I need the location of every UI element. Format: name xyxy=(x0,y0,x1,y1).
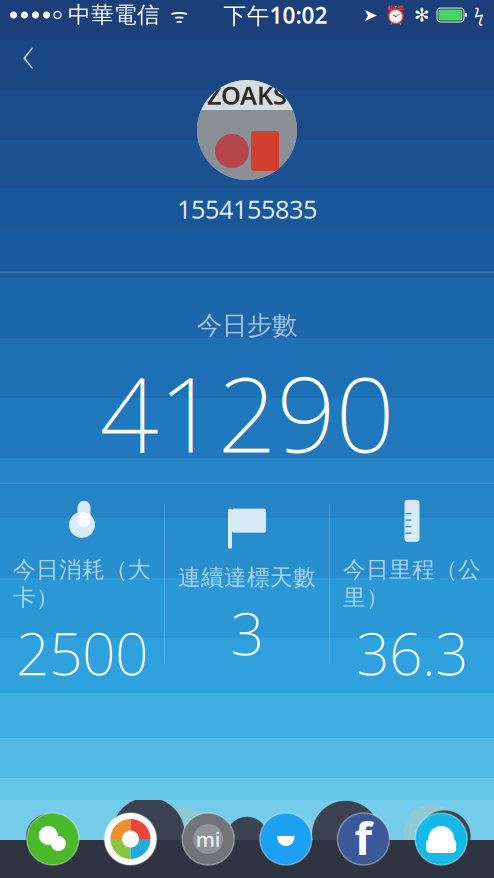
button[interactable]: Back xyxy=(4,30,52,74)
staticText: 2500 xyxy=(16,613,148,691)
button[interactable]: Facebook xyxy=(325,813,402,865)
staticText: ➤ xyxy=(363,5,378,25)
staticText: 今日里程（公里） xyxy=(343,556,481,611)
staticText: ᯤ xyxy=(160,2,188,28)
staticText: ϟ xyxy=(474,3,484,26)
staticText: 36.3 xyxy=(356,613,468,691)
staticText: ✻ xyxy=(414,4,430,26)
staticText: 41290 xyxy=(99,343,394,481)
staticText: 3 xyxy=(230,593,263,671)
staticText: mi xyxy=(196,826,221,852)
button[interactable]: WeChat xyxy=(14,813,92,865)
staticText: 1554155835 xyxy=(177,192,317,226)
button[interactable]: 連續達標天數 xyxy=(165,484,329,684)
staticText: 連續達標天數 xyxy=(178,564,316,591)
staticText: ⏰ xyxy=(385,5,407,25)
button[interactable]: 今日消耗（大卡） xyxy=(0,476,164,691)
staticText: 下午10:02 xyxy=(223,0,327,30)
button[interactable]: MiTalk xyxy=(169,813,247,865)
staticText: f xyxy=(354,807,372,868)
button[interactable]: Twitter xyxy=(247,813,325,865)
button[interactable]: 今日里程（公里） xyxy=(330,476,494,691)
staticText: 中華電信 xyxy=(61,1,160,29)
staticText: ‹ xyxy=(22,15,34,89)
button[interactable]: Photo album xyxy=(92,813,169,865)
staticText: ZOAKS xyxy=(207,78,287,112)
button[interactable]: Profile photo xyxy=(197,80,297,180)
staticText: 今日步數 xyxy=(197,310,297,341)
button[interactable]: QQ xyxy=(402,813,480,865)
staticText: 今日消耗（大卡） xyxy=(13,556,151,611)
